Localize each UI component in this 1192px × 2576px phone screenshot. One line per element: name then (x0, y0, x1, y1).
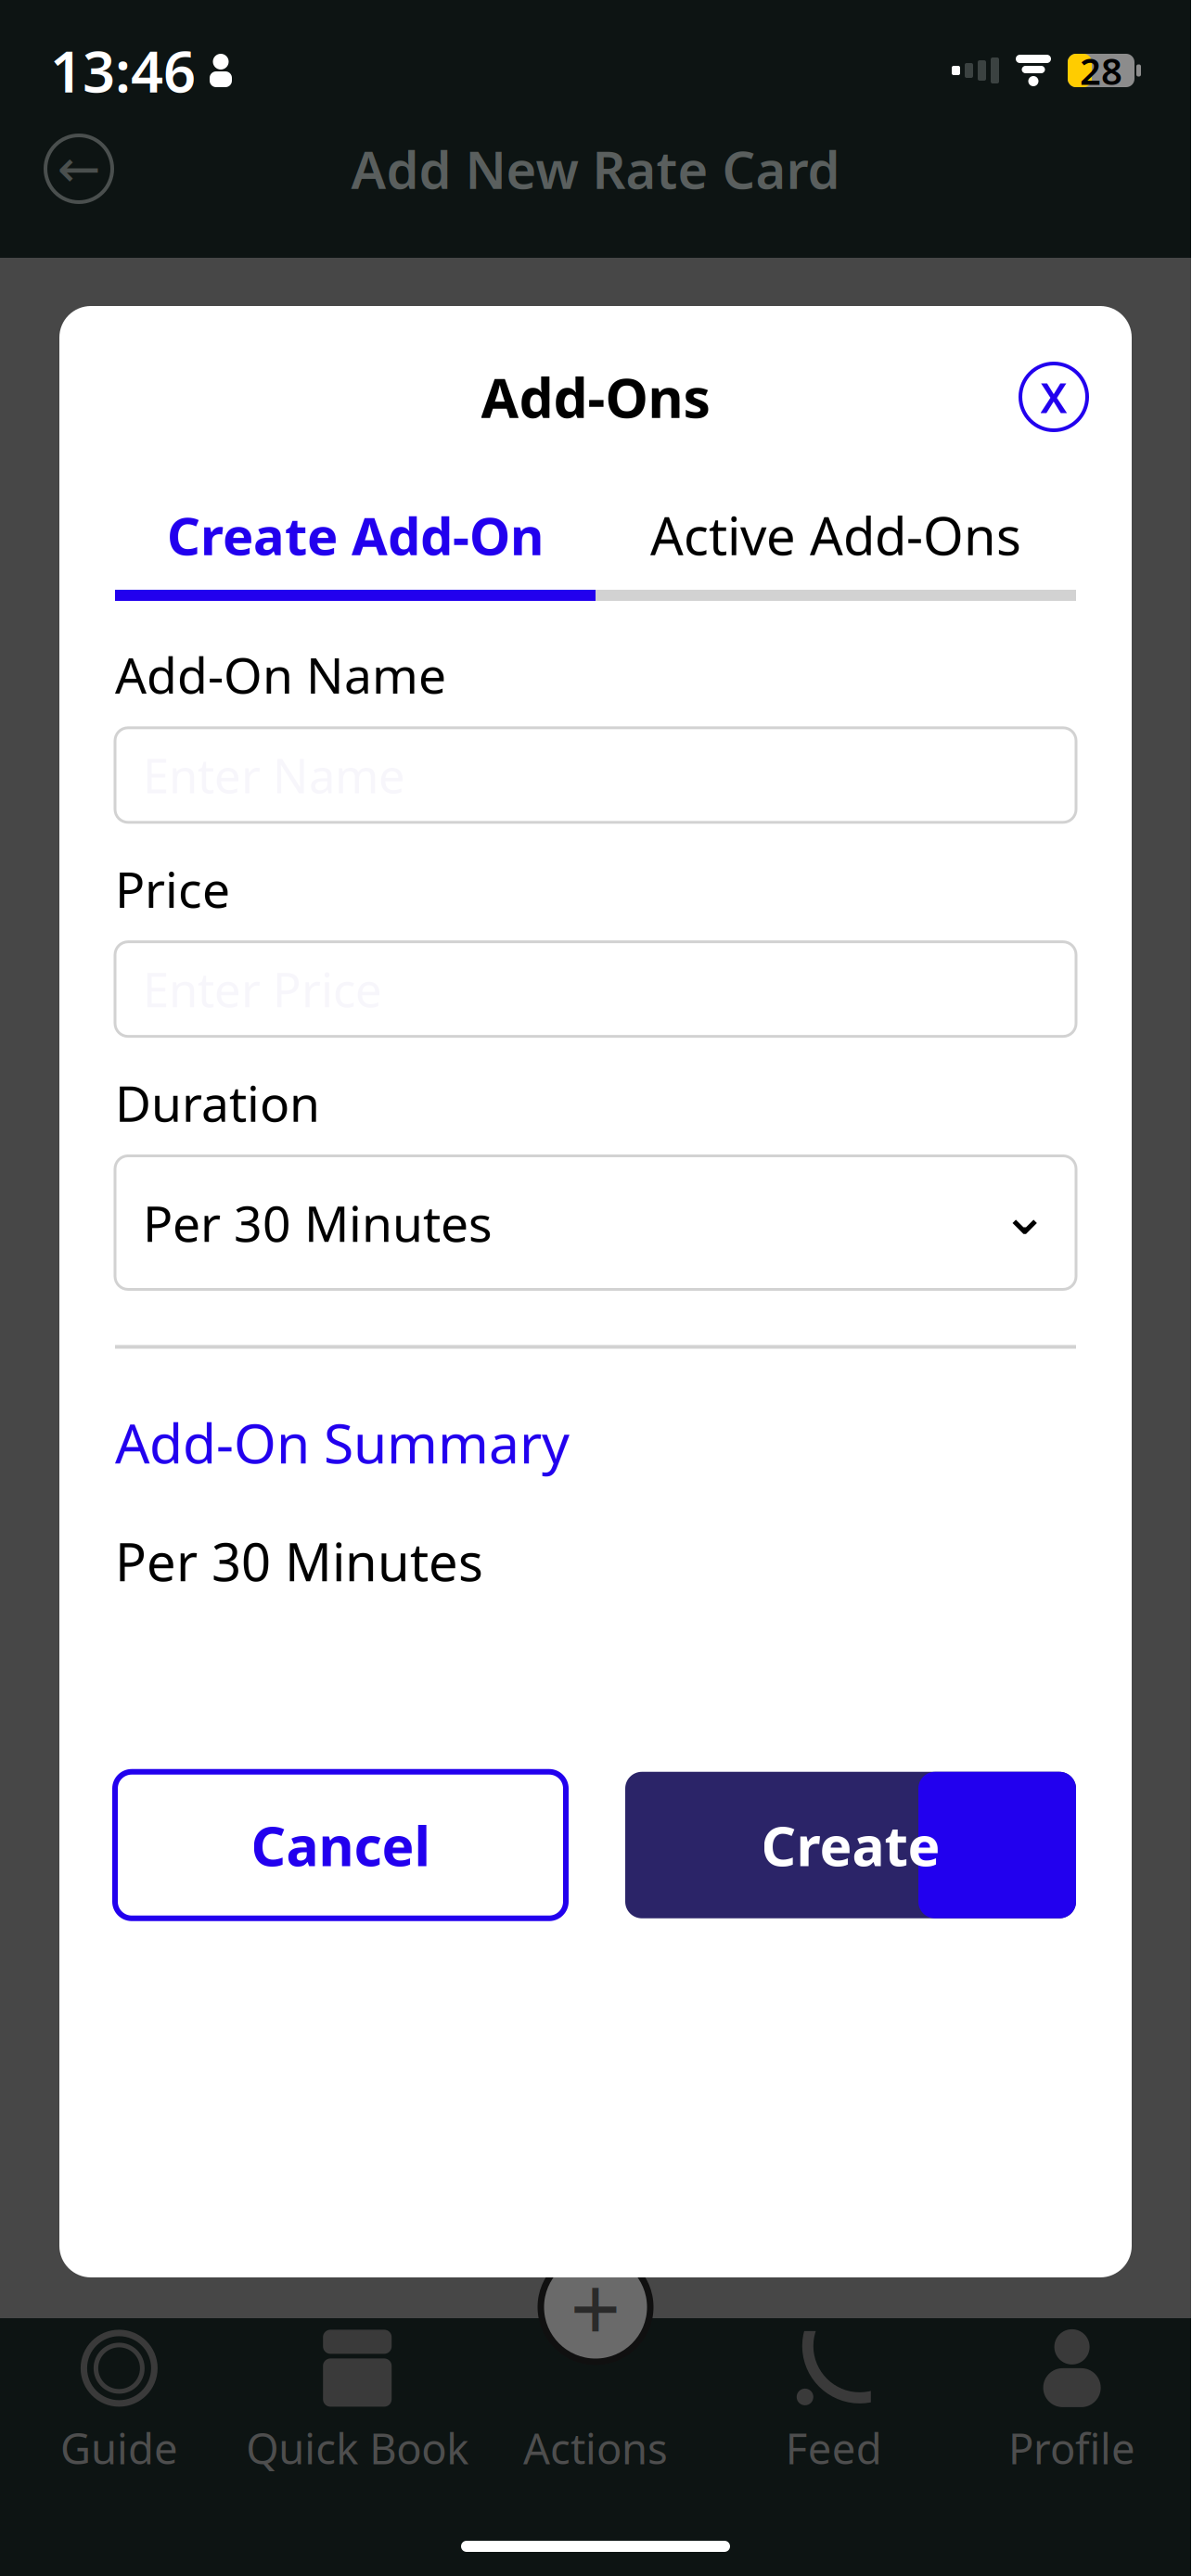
staticText: Per 30 Minutes (115, 1527, 483, 1596)
button[interactable]: Per 30 Minutes (115, 1156, 1076, 1289)
staticText: Actions (523, 2420, 668, 2476)
button[interactable]: Close (1015, 358, 1093, 436)
staticText: Create (761, 1809, 940, 1881)
staticText: 13:46 (50, 33, 196, 108)
button[interactable]: Enter Name (115, 728, 1076, 822)
staticText: Duration (115, 1070, 320, 1135)
staticText: ⌄ (1001, 1182, 1048, 1247)
staticText: Enter Name (143, 744, 405, 806)
staticText: Add New Rate Card (351, 134, 840, 203)
staticText: Per 30 Minutes (143, 1190, 493, 1255)
button[interactable]: Actions (476, 2318, 715, 2483)
button[interactable]: Create Add-On (115, 495, 596, 575)
staticText: Feed (786, 2420, 882, 2476)
staticText: Enter Price (143, 958, 382, 1020)
button[interactable]: Actions (532, 2244, 659, 2370)
staticText: X (1040, 369, 1067, 425)
staticText: + (570, 2248, 621, 2366)
button[interactable]: Active Add-Ons (596, 495, 1076, 575)
staticText: ← (57, 139, 101, 198)
button[interactable]: Cancel (115, 1772, 566, 1918)
button[interactable]: Quick Book (238, 2318, 476, 2483)
staticText: Create Add-On (167, 501, 544, 570)
button[interactable]: Feed (715, 2318, 953, 2483)
staticText: Price (115, 856, 230, 921)
staticText: Active Add-Ons (650, 501, 1021, 570)
staticText: Add-Ons (481, 361, 710, 433)
staticText: 28 (1080, 46, 1122, 95)
staticText: Cancel (251, 1809, 430, 1881)
staticText: Guide (60, 2420, 178, 2476)
staticText: Quick Book (246, 2420, 469, 2476)
staticText: Add-On Summary (115, 1406, 570, 1478)
button[interactable]: Back (39, 129, 119, 209)
button[interactable]: Enter Price (115, 942, 1076, 1036)
staticText: Add-On Name (115, 642, 446, 707)
button[interactable]: Guide (0, 2318, 238, 2483)
button[interactable]: Create (625, 1772, 1076, 1918)
staticText: Profile (1008, 2420, 1136, 2476)
button[interactable]: Profile (953, 2318, 1191, 2483)
